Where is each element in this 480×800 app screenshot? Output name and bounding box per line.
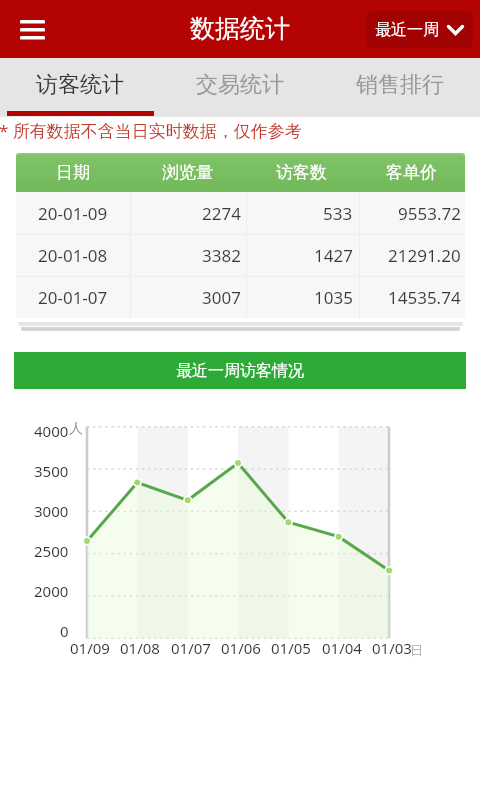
staticText: 3000 (34, 501, 69, 521)
staticText: 4000 (34, 421, 69, 441)
button[interactable]: 销售排行 (320, 58, 480, 117)
staticText: 销售排行 (356, 71, 444, 99)
staticText: 1035 (314, 286, 353, 309)
staticText: 交易统计 (196, 71, 284, 99)
staticText: 01/05 (271, 638, 311, 658)
staticText: 3500 (34, 461, 69, 481)
staticText: 3382 (202, 244, 241, 267)
staticText: 01/09 (70, 638, 110, 658)
staticText: 访客统计 (36, 71, 124, 99)
staticText: 2000 (34, 581, 69, 601)
staticText: 客单价 (386, 162, 437, 183)
staticText: 20-01-08 (38, 244, 108, 267)
staticText: 20-01-07 (38, 286, 108, 309)
button[interactable]: Menu (8, 5, 56, 53)
button[interactable]: 交易统计 (160, 58, 320, 117)
staticText: 0 (60, 621, 69, 641)
staticText: 01/07 (171, 638, 211, 658)
staticText: 浏览量 (162, 162, 213, 183)
staticText: 最近一周访客情况 (176, 361, 304, 381)
staticText: 2274 (202, 202, 241, 225)
staticText: 01/08 (120, 638, 160, 658)
staticText: 访客数 (276, 162, 327, 183)
staticText: 14535.74 (388, 286, 461, 309)
staticText: 01/06 (221, 638, 261, 658)
button[interactable]: 最近一周访客情况 (14, 352, 466, 389)
button[interactable]: 最近一周 (366, 11, 473, 48)
staticText: 数据统计 (190, 13, 290, 44)
staticText: 2500 (34, 541, 69, 561)
button[interactable]: 访客统计 (0, 58, 160, 117)
staticText: 日期 (56, 162, 90, 183)
staticText: 533 (323, 202, 353, 225)
staticText: 21291.20 (388, 244, 461, 267)
staticText: * 所有数据不含当日实时数据，仅作参考 (0, 119, 302, 142)
staticText: 01/04 (322, 638, 362, 658)
staticText: 最近一周 (375, 20, 439, 40)
staticText: 20-01-09 (38, 202, 108, 225)
staticText: 人 (69, 420, 83, 438)
staticText: 9553.72 (398, 202, 461, 225)
staticText: 01/03 (372, 638, 412, 658)
staticText: 日 (410, 642, 423, 658)
staticText: 3007 (202, 286, 241, 309)
staticText: 1427 (314, 244, 353, 267)
